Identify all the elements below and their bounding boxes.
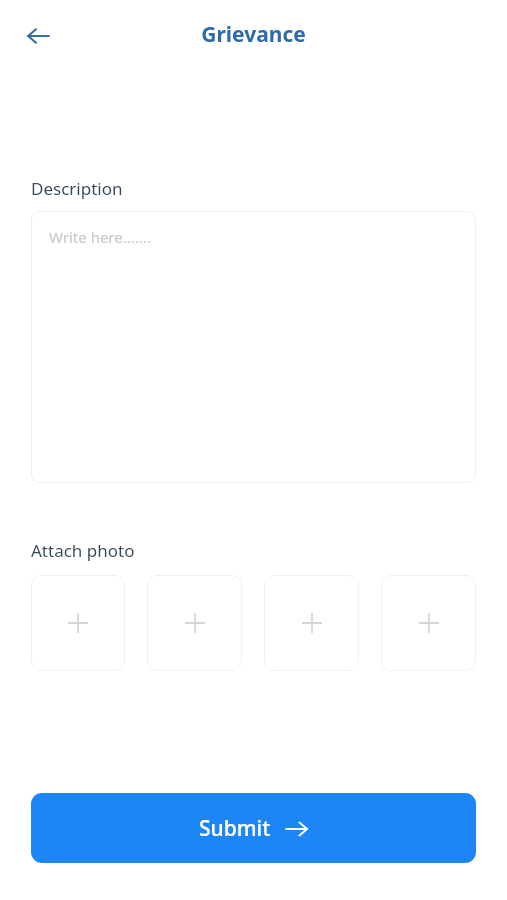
button[interactable]: Add photo <box>147 575 242 671</box>
button[interactable]: Add photo <box>381 575 476 671</box>
button[interactable]: Write here....... <box>31 211 476 483</box>
staticText: Description <box>31 177 123 200</box>
button[interactable]: Add photo <box>31 575 125 671</box>
staticText: Grievance <box>201 20 306 49</box>
staticText: Write here....... <box>49 227 151 247</box>
staticText: Attach photo <box>31 539 135 562</box>
button[interactable]: Back <box>14 12 62 60</box>
button[interactable]: Submit <box>31 793 476 863</box>
staticText: Submit <box>199 814 271 843</box>
button[interactable]: Add photo <box>264 575 359 671</box>
